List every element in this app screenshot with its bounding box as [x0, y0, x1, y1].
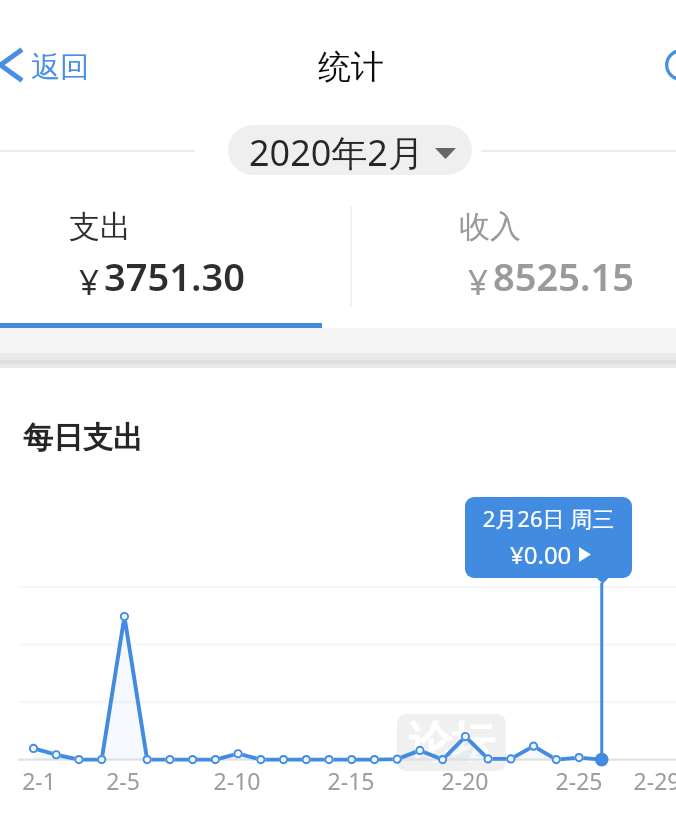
- staticText: 2-5: [93, 765, 153, 796]
- staticText: 2月26日 周三: [475, 503, 622, 533]
- staticText: ¥: [468, 258, 489, 306]
- button[interactable]: 返回: [0, 36, 98, 94]
- staticText: 2-10: [207, 765, 267, 796]
- button[interactable]: 2020年2月: [228, 125, 472, 175]
- staticText: ¥: [79, 258, 100, 306]
- button[interactable]: 支出: [0, 190, 338, 322]
- staticText: 2-25: [549, 765, 609, 796]
- staticText: 2-15: [321, 765, 381, 796]
- staticText: 2-1: [9, 765, 69, 796]
- staticText: 2020年2月: [249, 128, 424, 175]
- staticText: 论坛: [409, 716, 495, 770]
- staticText: 支出: [40, 207, 160, 246]
- staticText: 返回: [31, 49, 89, 86]
- staticText: 统计: [251, 46, 451, 88]
- button[interactable]: 收入: [338, 190, 676, 322]
- staticText: 3751.30: [104, 250, 245, 302]
- button[interactable]: More options: [636, 36, 676, 94]
- staticText: 收入: [430, 207, 550, 246]
- staticText: 每日支出: [23, 419, 143, 457]
- staticText: 2-29: [627, 765, 676, 796]
- button[interactable]: 2月26日 周三: [465, 497, 632, 578]
- staticText: 8525.15: [493, 250, 634, 302]
- staticText: 2-20: [435, 765, 495, 796]
- staticText: ¥0.00: [510, 538, 572, 571]
